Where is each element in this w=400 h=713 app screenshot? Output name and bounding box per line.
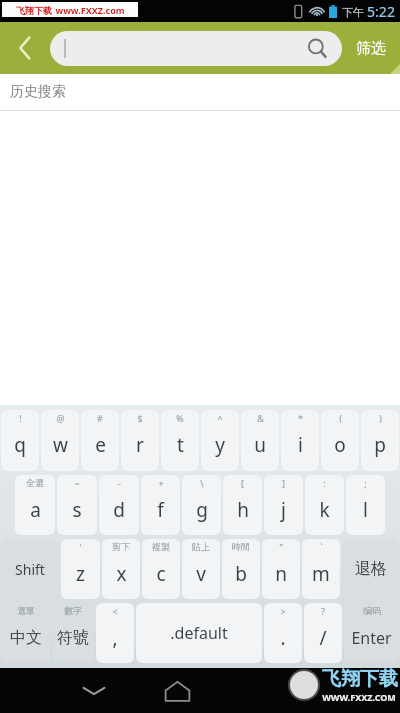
button[interactable]: 複製 <box>142 539 180 599</box>
staticText: 退格 <box>355 559 387 579</box>
button[interactable]: ^ <box>201 410 239 471</box>
button[interactable]: Search <box>50 31 342 66</box>
staticText: e <box>95 432 106 458</box>
staticText: 數字 <box>64 605 82 616</box>
button[interactable]: 历史搜索 <box>0 74 400 110</box>
staticText: ` <box>320 541 323 553</box>
button[interactable]: ] <box>264 475 303 535</box>
staticText: 中文 <box>10 628 42 648</box>
button[interactable]: Shift <box>1 539 59 599</box>
staticText: a <box>30 497 41 523</box>
staticText: % <box>176 412 184 424</box>
button[interactable]: # <box>81 410 119 471</box>
staticText: WWW.FXXZ.COM <box>322 691 396 703</box>
staticText: 時間 <box>232 541 250 552</box>
button[interactable]: " <box>262 539 300 599</box>
staticText: www.FXXZ.com <box>55 4 125 16</box>
staticText: ^ <box>217 412 223 424</box>
button[interactable]: 時間 <box>222 539 260 599</box>
staticText: Enter <box>351 627 392 649</box>
staticText: i <box>298 432 303 458</box>
staticText: l <box>363 497 368 523</box>
staticText: . <box>280 625 286 651</box>
button[interactable]: \ <box>182 475 221 535</box>
staticText: h <box>237 497 249 523</box>
button[interactable]: 數字 <box>52 603 94 663</box>
button[interactable]: ` <box>302 539 340 599</box>
staticText: m <box>312 561 330 587</box>
staticText: ' <box>79 541 82 553</box>
button[interactable]: * <box>281 410 319 471</box>
other: Search <box>307 38 328 59</box>
staticText: o <box>334 432 346 458</box>
staticText: f <box>157 497 164 523</box>
staticText: 历史搜索 <box>10 83 66 101</box>
staticText: # <box>97 412 103 424</box>
button[interactable]: > <box>264 603 302 663</box>
button[interactable]: [ <box>223 475 262 535</box>
staticText: 複製 <box>152 541 170 552</box>
staticText: ! <box>19 412 22 424</box>
button[interactable]: ) <box>361 410 399 471</box>
staticText: g <box>196 497 208 523</box>
button[interactable]: .default <box>136 603 262 663</box>
staticText: w <box>53 432 68 458</box>
staticText: z <box>76 561 85 587</box>
staticText: ~ <box>74 477 80 489</box>
button[interactable]: 選單 <box>1 603 50 663</box>
staticText: 筛选 <box>356 39 386 58</box>
staticText: 貼上 <box>192 541 210 552</box>
button[interactable]: + <box>141 475 180 535</box>
staticText: ) <box>379 412 382 424</box>
staticText: 飞翔下载 <box>16 5 52 16</box>
button[interactable]: & <box>241 410 279 471</box>
button[interactable]: @ <box>41 410 79 471</box>
staticText: 剪下 <box>112 541 130 552</box>
staticText: 符號 <box>57 628 89 648</box>
staticText: @ <box>56 412 65 424</box>
staticText: 5:22 <box>367 2 395 21</box>
staticText: k <box>319 497 330 523</box>
button[interactable]: 貼上 <box>182 539 220 599</box>
staticText: d <box>113 497 125 523</box>
button[interactable]: ' <box>61 539 100 599</box>
staticText: ( <box>339 412 342 424</box>
staticText: x <box>116 561 127 587</box>
staticText: - <box>118 477 121 489</box>
staticText: $ <box>137 412 143 424</box>
button[interactable]: Hide keyboard <box>72 669 116 713</box>
staticText: : <box>323 477 326 489</box>
button[interactable]: ! <box>1 410 39 471</box>
staticText: 编码 <box>363 605 381 616</box>
staticText: ? <box>321 605 325 617</box>
staticText: j <box>281 497 286 523</box>
staticText: .default <box>170 622 228 644</box>
staticText: u <box>254 432 266 458</box>
staticText: + <box>158 477 164 489</box>
button[interactable]: ~ <box>57 475 97 535</box>
staticText: n <box>275 561 287 587</box>
staticText: 全選 <box>26 477 44 488</box>
button[interactable]: 编码 <box>344 603 399 663</box>
staticText: Shift <box>15 560 45 579</box>
button[interactable]: Back <box>0 22 50 74</box>
staticText: s <box>72 497 82 523</box>
button[interactable]: % <box>161 410 199 471</box>
button[interactable]: 剪下 <box>102 539 140 599</box>
button[interactable]: ; <box>346 475 385 535</box>
button[interactable]: 退格 <box>342 539 399 599</box>
staticText: < <box>112 605 118 617</box>
button[interactable]: : <box>305 475 344 535</box>
button[interactable]: $ <box>121 410 159 471</box>
button[interactable]: ? <box>304 603 342 663</box>
button[interactable]: Home <box>154 668 200 713</box>
button[interactable]: < <box>96 603 134 663</box>
button[interactable]: 筛选 <box>342 22 400 74</box>
staticText: , <box>112 625 118 651</box>
button[interactable]: ( <box>321 410 359 471</box>
button[interactable]: - <box>99 475 139 535</box>
staticText: " <box>279 541 283 553</box>
button[interactable]: 全選 <box>15 475 55 535</box>
staticText: p <box>374 432 386 458</box>
staticText: r <box>136 432 144 458</box>
